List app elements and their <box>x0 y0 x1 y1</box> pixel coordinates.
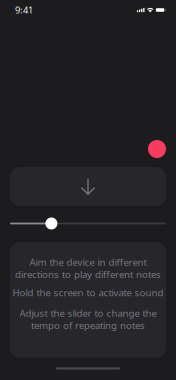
staticText: Adjust the slider to change the <box>19 306 156 320</box>
staticText: Aim the device in different <box>29 255 146 269</box>
button[interactable]: Direction indicator <box>10 167 166 206</box>
staticText: Hold the screen to activate sound <box>12 286 163 299</box>
staticText: tempo of repeating notes <box>31 319 145 332</box>
staticText: 9:41 <box>15 4 33 16</box>
staticText: directions to play different notes <box>15 268 161 281</box>
